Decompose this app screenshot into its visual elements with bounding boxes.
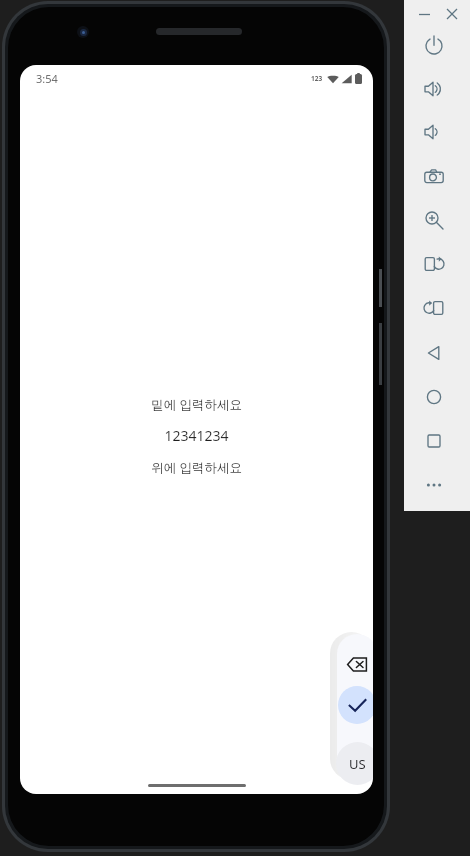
button[interactable]: Volume down bbox=[417, 115, 451, 149]
button[interactable]: Take screenshot bbox=[417, 160, 451, 194]
staticText: US bbox=[349, 755, 366, 773]
button[interactable]: Minimize bbox=[412, 2, 436, 26]
button[interactable]: Backspace bbox=[339, 646, 373, 682]
button[interactable]: Overview bbox=[417, 424, 451, 458]
button[interactable]: Back bbox=[417, 336, 451, 370]
button[interactable]: Zoom bbox=[417, 203, 451, 237]
staticText: 123 bbox=[311, 74, 323, 83]
button[interactable]: Confirm bbox=[338, 686, 373, 724]
button[interactable]: More bbox=[417, 468, 451, 502]
staticText: 밑에 입력하세요 bbox=[151, 396, 242, 413]
button[interactable]: Home bbox=[417, 380, 451, 414]
button[interactable]: US bbox=[336, 742, 373, 785]
button[interactable]: Power bbox=[417, 28, 451, 62]
button[interactable]: Emoji bbox=[340, 734, 373, 768]
button[interactable]: Volume up bbox=[417, 72, 451, 106]
staticText: 3:54 bbox=[36, 71, 58, 86]
staticText: 위에 입력하세요 bbox=[151, 459, 242, 476]
button[interactable]: Rotate right bbox=[417, 291, 451, 325]
staticText: 12341234 bbox=[164, 426, 229, 445]
button[interactable]: Close bbox=[440, 2, 464, 26]
button[interactable]: Rotate left bbox=[417, 247, 451, 281]
